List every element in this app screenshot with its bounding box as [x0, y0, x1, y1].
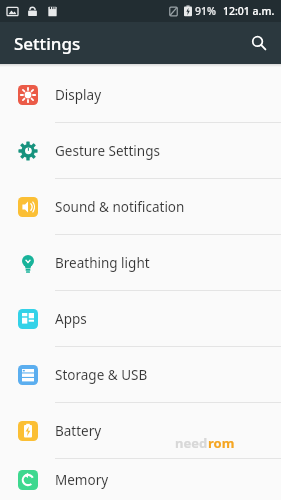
- button[interactable]: Search: [242, 26, 276, 60]
- button[interactable]: Battery: [0, 403, 281, 458]
- staticText: 12:01 a.m.: [223, 4, 275, 18]
- staticText: Sound & notification: [55, 198, 185, 216]
- staticText: need: [175, 434, 208, 452]
- button[interactable]: Apps: [0, 291, 281, 346]
- button[interactable]: Gesture Settings: [0, 123, 281, 178]
- staticText: Settings: [14, 32, 81, 55]
- staticText: Memory: [55, 471, 109, 489]
- button[interactable]: Memory: [0, 459, 281, 500]
- button[interactable]: Breathing light: [0, 235, 281, 290]
- staticText: rom: [208, 434, 235, 452]
- staticText: Apps: [55, 310, 87, 328]
- staticText: Breathing light: [55, 254, 150, 272]
- staticText: Display: [55, 86, 102, 104]
- staticText: Storage & USB: [55, 366, 148, 384]
- button[interactable]: Storage & USB: [0, 347, 281, 402]
- button[interactable]: Display: [0, 67, 281, 122]
- button[interactable]: Sound & notification: [0, 179, 281, 234]
- staticText: Battery: [55, 422, 102, 440]
- staticText: Gesture Settings: [55, 142, 160, 160]
- staticText: 91%: [195, 4, 216, 18]
